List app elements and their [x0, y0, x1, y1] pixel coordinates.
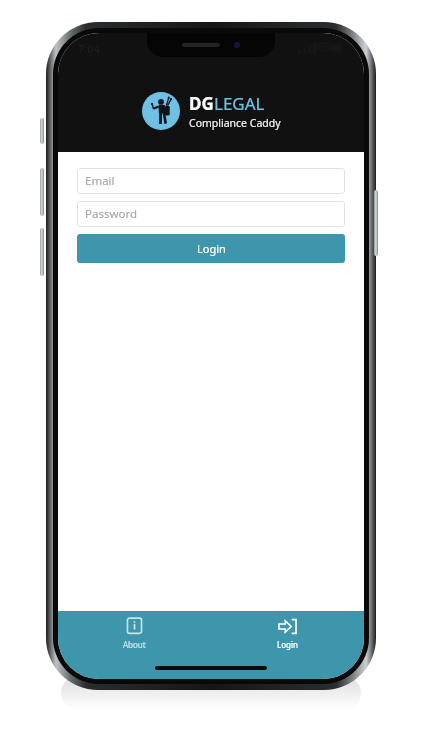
other: Login: [278, 617, 297, 636]
button[interactable]: Email: [77, 168, 345, 194]
staticText: Email: [85, 173, 115, 189]
staticText: LEGAL: [214, 92, 265, 115]
staticText: Password: [85, 206, 138, 222]
button[interactable]: Password: [77, 201, 345, 227]
button[interactable]: About: [58, 611, 211, 650]
other: DG Legal logo: [142, 92, 180, 130]
staticText: 7:04: [78, 41, 100, 56]
other: About: [125, 617, 144, 636]
staticText: About: [123, 639, 146, 650]
button[interactable]: Login: [211, 611, 364, 650]
button[interactable]: Login: [77, 234, 345, 263]
staticText: Login: [197, 241, 226, 256]
staticText: DG: [189, 92, 214, 115]
staticText: Login: [277, 639, 298, 650]
staticText: Compliance Caddy: [189, 116, 281, 130]
